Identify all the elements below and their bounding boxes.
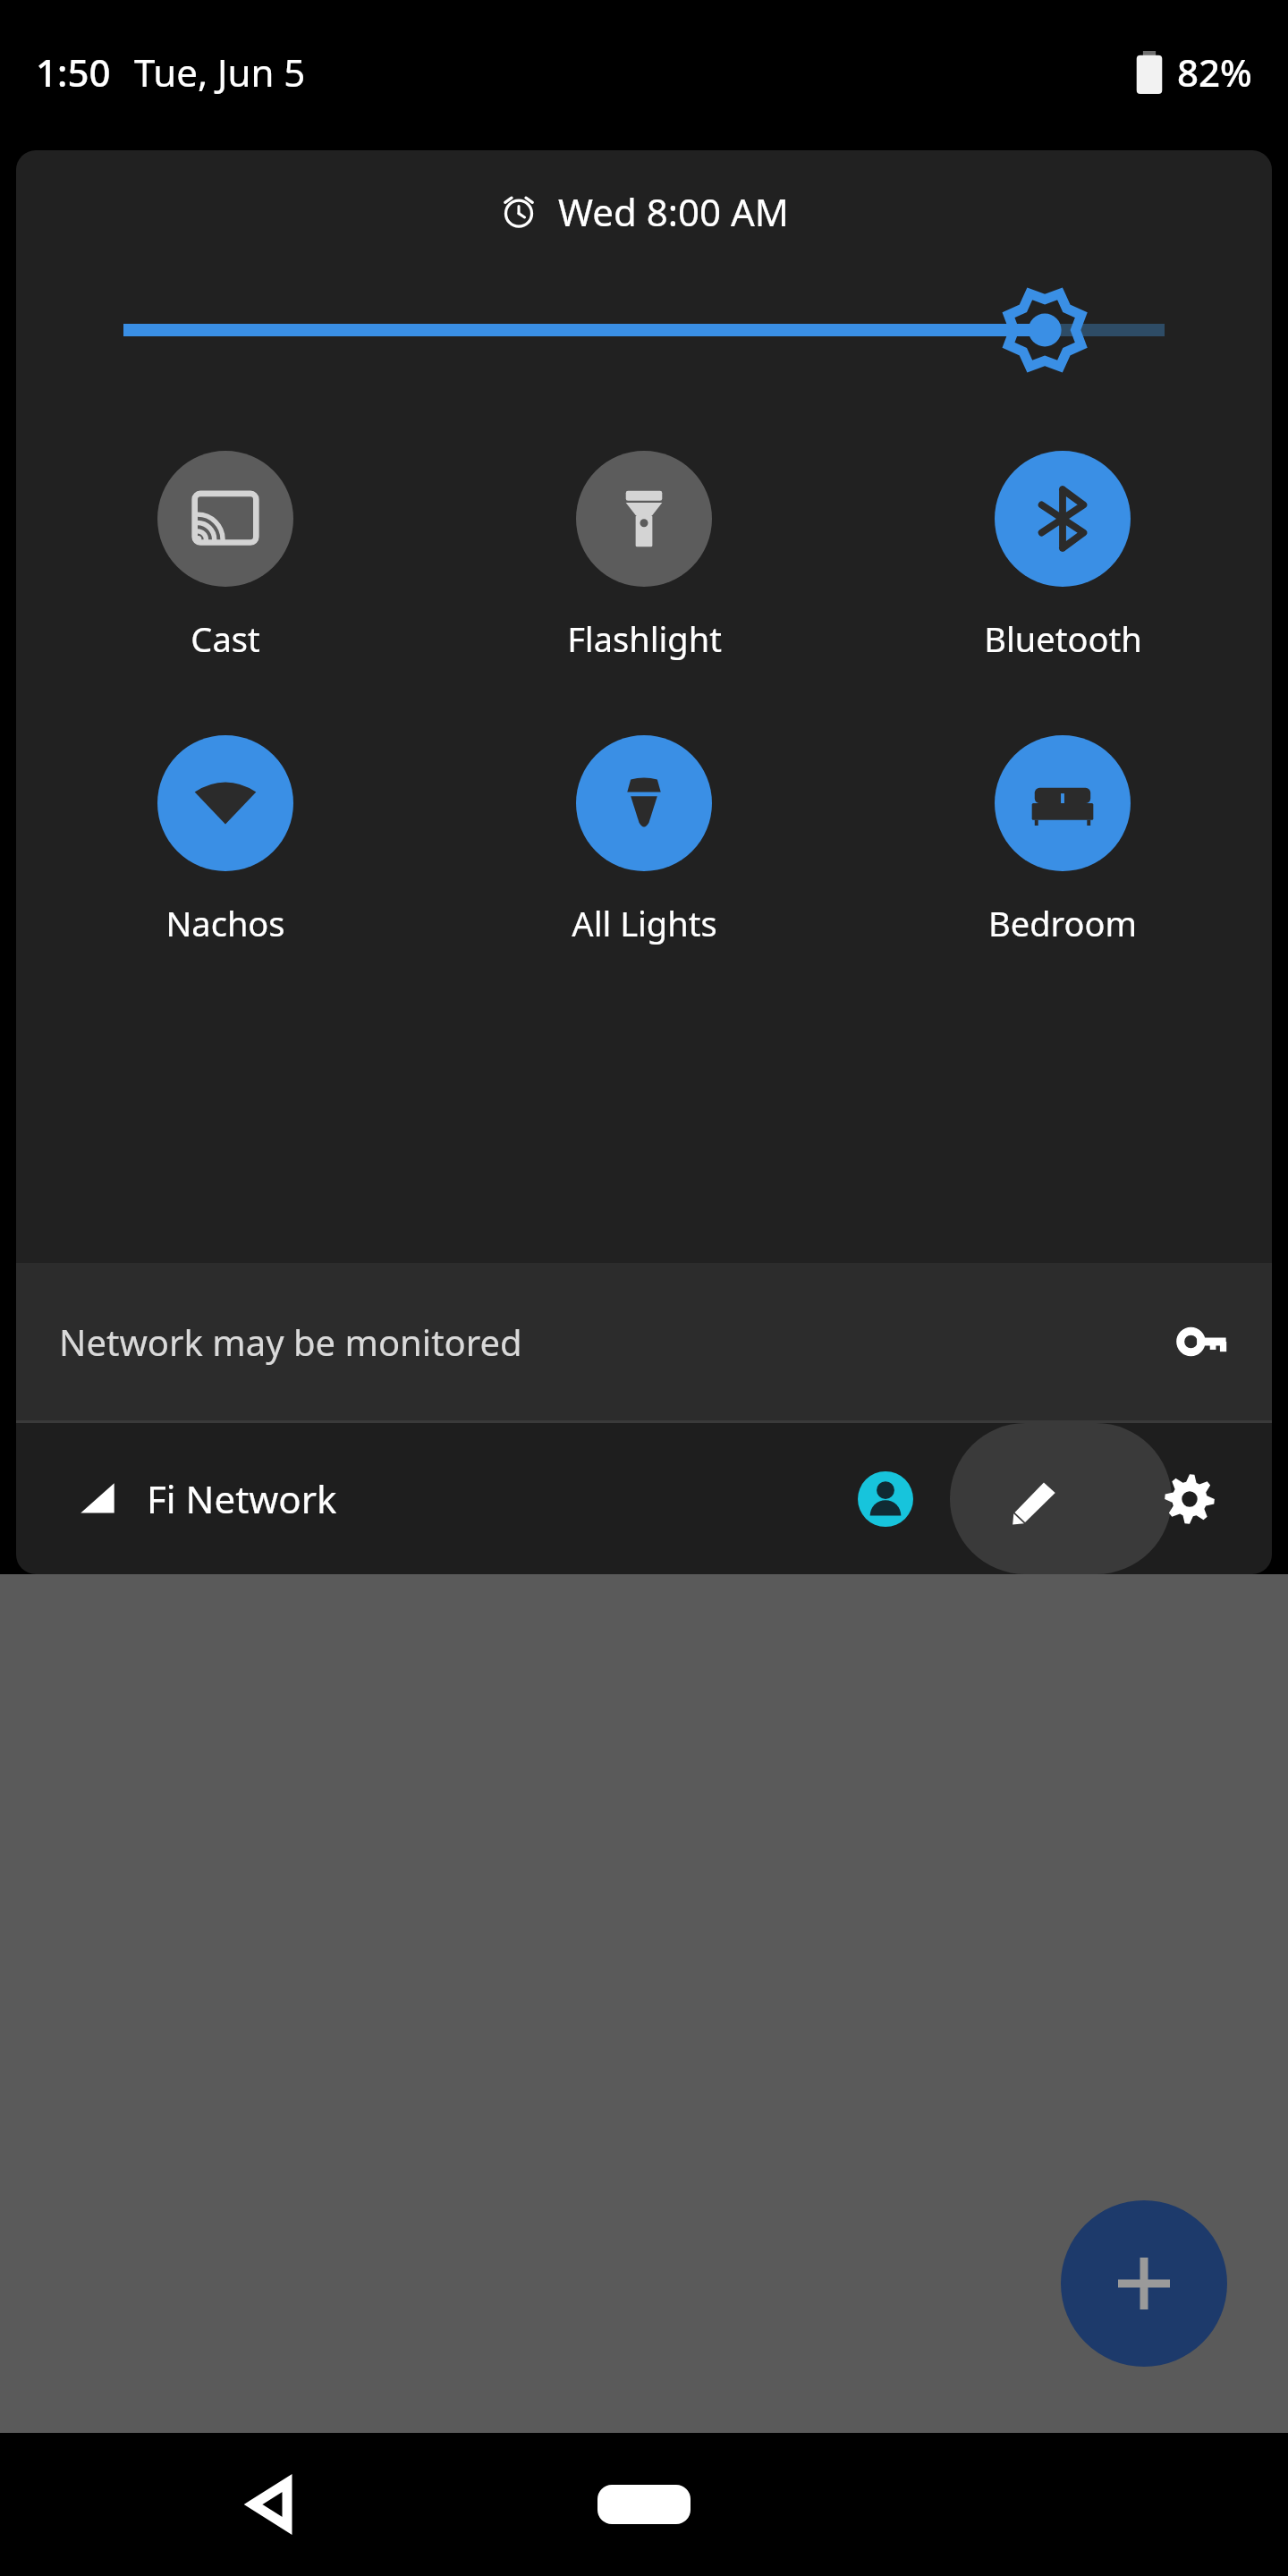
staticText: Fi Network (147, 1473, 337, 1524)
button[interactable]: All Lights (435, 735, 853, 946)
staticText: Network may be monitored (59, 1318, 522, 1366)
button[interactable]: Cast (16, 451, 435, 662)
staticText: Bedroom (988, 900, 1137, 946)
staticText: Cast (191, 615, 260, 662)
staticText: 1:50 (36, 47, 111, 97)
staticText: Flashlight (567, 615, 722, 662)
button[interactable]: Settings (1147, 1456, 1233, 1542)
button[interactable]: Home (572, 2455, 716, 2554)
button[interactable]: Wed 8:00 AM (16, 150, 1272, 272)
button[interactable]: Nachos (16, 735, 435, 946)
button[interactable]: Add (1061, 2200, 1227, 2367)
button[interactable]: User account (843, 1456, 928, 1542)
button[interactable]: Network may be monitored (16, 1263, 1272, 1420)
button[interactable]: Bedroom (853, 735, 1272, 946)
staticText: All Lights (572, 900, 717, 946)
button[interactable]: Edit tiles (995, 1456, 1080, 1542)
staticText: Tue, Jun 5 (134, 47, 306, 97)
button[interactable]: Flashlight (435, 451, 853, 662)
staticText: 82% (1177, 47, 1252, 97)
staticText: Wed 8:00 AM (558, 186, 789, 237)
staticText: Nachos (165, 900, 285, 946)
button[interactable]: Bluetooth (853, 451, 1272, 662)
button[interactable]: Back (224, 2455, 322, 2554)
button[interactable]: Brightness (16, 272, 1272, 388)
staticText: Bluetooth (984, 615, 1142, 662)
